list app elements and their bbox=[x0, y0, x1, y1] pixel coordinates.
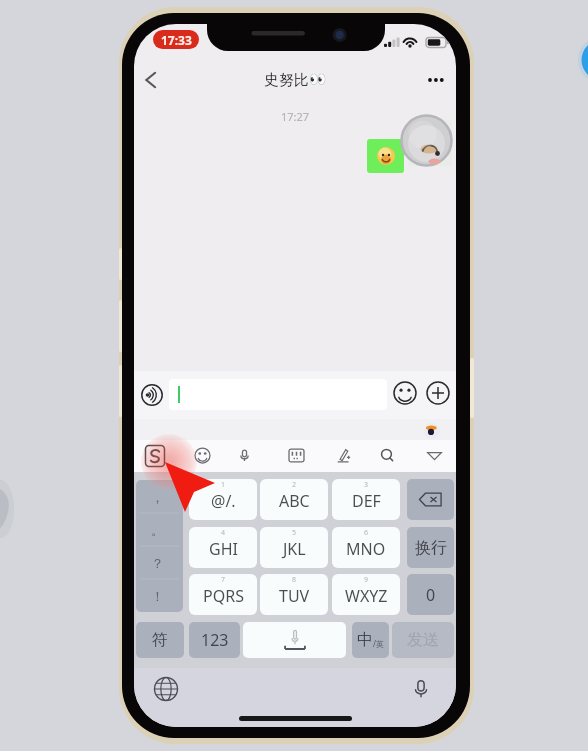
staticText: 4 bbox=[221, 528, 226, 538]
button[interactable]: 4 bbox=[189, 527, 257, 568]
staticText: WXYZ bbox=[345, 585, 388, 607]
staticText: MNO bbox=[346, 538, 386, 560]
staticText: 6 bbox=[364, 528, 369, 538]
button[interactable]: Sogou input settings bbox=[142, 443, 168, 469]
button[interactable]: 5 bbox=[260, 527, 328, 568]
staticText: 。 bbox=[151, 522, 164, 538]
staticText: DEF bbox=[352, 490, 381, 512]
button[interactable]: Switch keyboard language bbox=[153, 676, 179, 702]
button[interactable]: 3 bbox=[332, 479, 400, 520]
staticText: 17:33 bbox=[161, 32, 192, 48]
button[interactable]: Punctuation bbox=[136, 480, 183, 612]
staticText: GHI bbox=[209, 538, 238, 560]
button[interactable] bbox=[169, 379, 387, 410]
button[interactable]: 换行 bbox=[407, 527, 454, 568]
button[interactable]: 9 bbox=[332, 574, 400, 615]
staticText: ABC bbox=[279, 490, 310, 512]
button[interactable]: 7 bbox=[189, 574, 257, 615]
button[interactable]: 2 bbox=[260, 479, 328, 520]
button[interactable]: Handwriting bbox=[329, 441, 357, 469]
staticText: 史努比 bbox=[264, 71, 309, 90]
staticText: 123 bbox=[201, 629, 229, 651]
button[interactable]: More options bbox=[418, 64, 450, 96]
button[interactable]: Dictation bbox=[408, 676, 434, 702]
staticText: 17:27 bbox=[134, 109, 456, 124]
staticText: 发送 bbox=[407, 630, 439, 650]
button[interactable]: 123 bbox=[189, 622, 240, 658]
staticText: 7 bbox=[221, 575, 226, 585]
button[interactable]: Collapse keyboard bbox=[420, 441, 448, 469]
staticText: 2 bbox=[292, 480, 297, 490]
button[interactable]: 发送 bbox=[392, 622, 454, 658]
button[interactable]: Backspace bbox=[407, 479, 454, 520]
staticText: 9 bbox=[364, 575, 369, 585]
staticText: 8 bbox=[292, 575, 297, 585]
staticText: ？ bbox=[151, 555, 164, 571]
button[interactable]: Voice input bbox=[230, 441, 258, 469]
button[interactable]: Back bbox=[135, 62, 171, 98]
button[interactable]: 1 bbox=[189, 479, 257, 520]
staticText: @/. bbox=[211, 490, 236, 512]
button[interactable]: More actions bbox=[426, 381, 450, 405]
button[interactable]: Search bbox=[373, 441, 401, 469]
button[interactable]: Keyboard layout bbox=[282, 441, 310, 469]
staticText: ， bbox=[151, 489, 164, 505]
staticText: /英 bbox=[373, 638, 384, 649]
staticText: JKL bbox=[283, 538, 306, 560]
staticText: 0 bbox=[426, 584, 436, 606]
button[interactable]: 8 bbox=[260, 574, 328, 615]
button[interactable]: 0 bbox=[407, 574, 454, 615]
button[interactable]: Space bbox=[243, 622, 346, 658]
staticText: 换行 bbox=[415, 538, 447, 558]
staticText: PQRS bbox=[203, 585, 244, 607]
button[interactable]: Voice input bbox=[141, 384, 163, 406]
staticText: 符 bbox=[152, 630, 168, 650]
staticText: 👀 bbox=[309, 71, 327, 87]
button[interactable]: 6 bbox=[332, 527, 400, 568]
button[interactable]: Emoji bbox=[393, 381, 417, 405]
button[interactable]: 符 bbox=[136, 622, 184, 658]
staticText: TUV bbox=[279, 585, 310, 607]
button[interactable]: Emoji bbox=[188, 441, 216, 469]
staticText: 3 bbox=[364, 480, 369, 490]
staticText: 中 bbox=[357, 630, 373, 650]
button[interactable]: Switch Chinese English bbox=[352, 622, 389, 658]
staticText: ！ bbox=[151, 588, 164, 604]
staticText: 1 bbox=[221, 480, 226, 490]
staticText: 5 bbox=[292, 528, 297, 538]
